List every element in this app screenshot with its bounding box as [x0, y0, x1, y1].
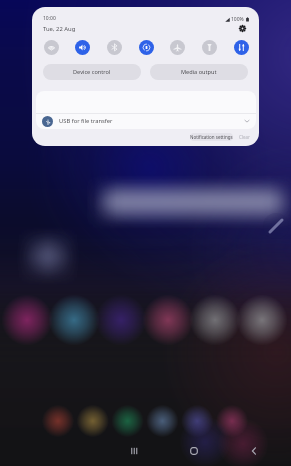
button[interactable]: torch: [202, 40, 217, 55]
staticText: Device control: [73, 68, 111, 76]
button[interactable]: Media output: [150, 64, 248, 80]
button[interactable]: USB for file transfer: [36, 113, 256, 129]
button[interactable]: Quick settings: [236, 22, 249, 35]
button[interactable]: bt: [107, 40, 122, 55]
button[interactable]: plane: [170, 40, 185, 55]
staticText: USB for file transfer: [59, 117, 113, 125]
staticText: Tue, 22 Aug: [43, 25, 76, 33]
button[interactable]: Home: [183, 440, 205, 462]
button[interactable]: wifi: [44, 40, 59, 55]
button[interactable]: Recent apps: [123, 440, 145, 462]
button[interactable]: data: [234, 40, 249, 55]
staticText: Notification settings: [190, 134, 233, 140]
button[interactable]: sound: [75, 40, 90, 55]
staticText: Media output: [181, 68, 217, 76]
staticText: 10:00: [43, 15, 56, 22]
button[interactable]: Device control: [43, 64, 141, 80]
button[interactable]: rotate: [139, 40, 154, 55]
button[interactable]: Back: [243, 440, 265, 462]
staticText: Clear: [239, 134, 250, 140]
button[interactable]: Clear: [239, 134, 250, 140]
staticText: 100%: [231, 16, 244, 23]
button[interactable]: Notification settings: [190, 133, 233, 141]
